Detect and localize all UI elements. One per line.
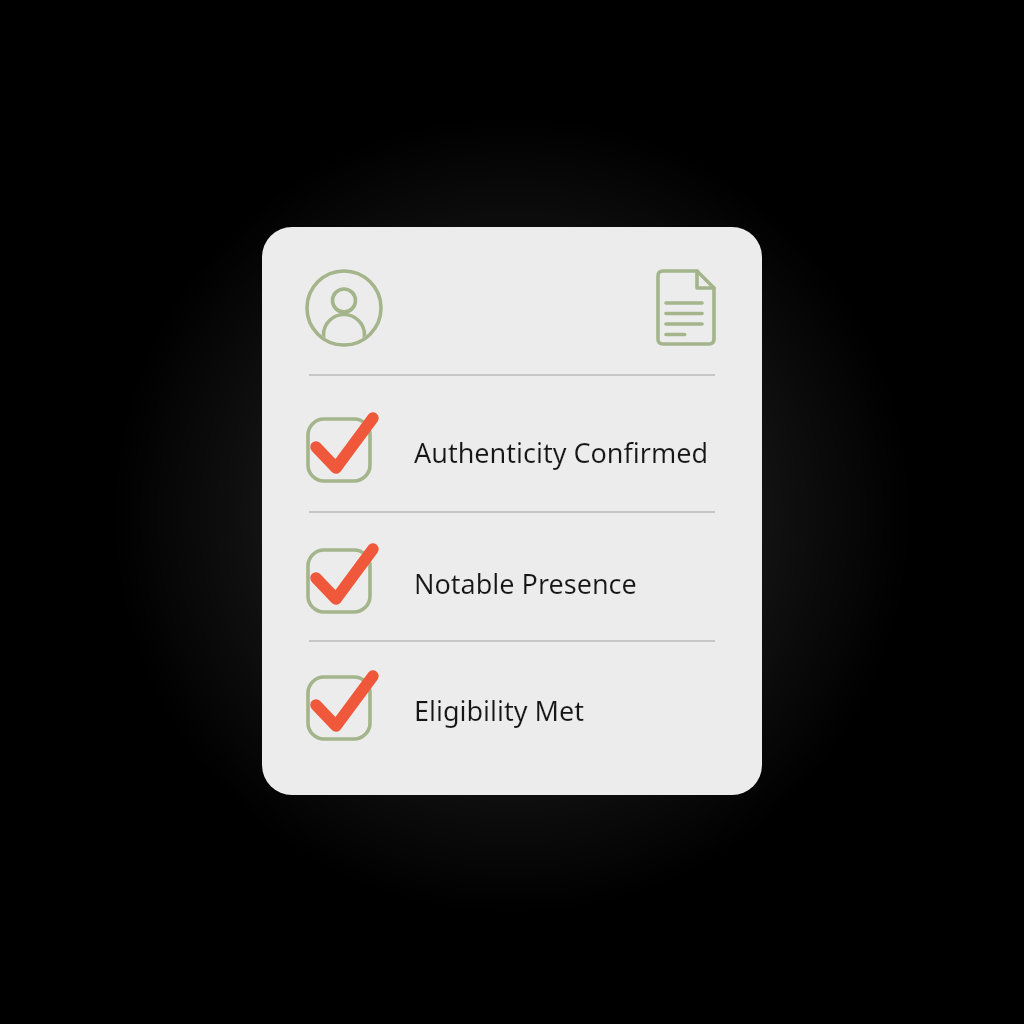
button[interactable]: Profile <box>303 267 385 349</box>
button[interactable]: Eligibility Met <box>303 670 721 750</box>
button[interactable]: Document <box>652 267 734 349</box>
staticText: Authenticity Confirmed <box>414 434 709 471</box>
button[interactable]: Notable Presence <box>303 543 721 623</box>
staticText: Eligibility Met <box>414 692 585 729</box>
staticText: Notable Presence <box>414 565 637 602</box>
button[interactable]: Authenticity Confirmed <box>303 412 721 492</box>
